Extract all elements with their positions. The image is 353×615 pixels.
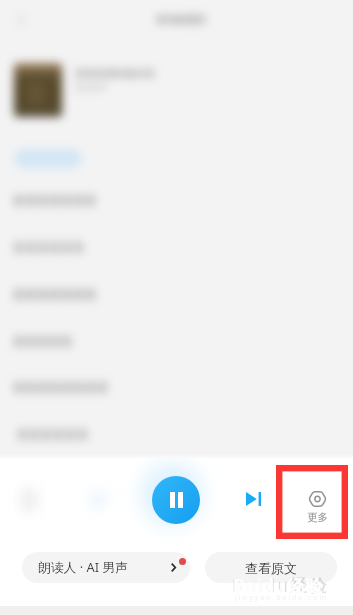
button[interactable]: 查看原文 [205,552,337,583]
staticText: 更多 [307,511,328,524]
staticText: 朗读人 · AI 男声 [38,558,128,575]
button[interactable]: More [298,490,336,524]
staticText: 新闻来源标题内容 [75,67,155,80]
button[interactable]: Next track [246,492,261,506]
staticText: 资讯标题页 [156,13,206,26]
button[interactable]: 朗读人 · AI 男声 [22,552,190,583]
button[interactable]: Pause [152,476,200,524]
staticText: Baidu经验 [232,573,328,598]
staticText: Baidu经验 [233,574,324,597]
staticText: 查看原文 [245,560,297,576]
staticText: jingyan.baidu.com [235,593,328,603]
